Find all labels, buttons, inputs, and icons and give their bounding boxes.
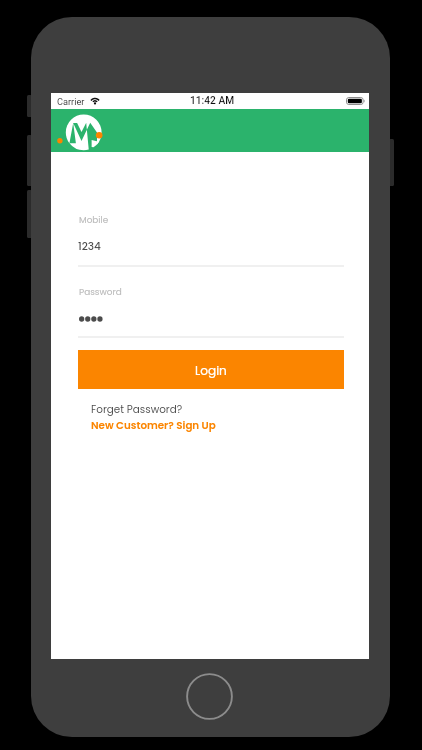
other: Silent switch [27,95,32,117]
button[interactable]: 1234 [78,239,101,254]
button[interactable]: Home [186,673,233,720]
other: Volume down [27,190,32,238]
button[interactable]: New Customer? Sign Up [91,418,216,432]
button[interactable]: Login [78,350,344,389]
staticText: 11:42 AM [190,95,235,107]
staticText: Forget Password? [91,402,183,417]
staticText: Password [79,286,122,298]
other: Volume up [27,135,32,186]
staticText: Login [195,362,227,379]
other: Battery full [346,97,365,105]
staticText: Mobile [79,214,109,226]
staticText: Carrier [57,96,85,107]
staticText: New Customer? Sign Up [91,418,216,432]
button[interactable]: App logo [54,109,108,152]
button[interactable]: Password [79,316,104,322]
other: Power [389,139,394,186]
button[interactable]: Forget Password? [91,402,183,417]
